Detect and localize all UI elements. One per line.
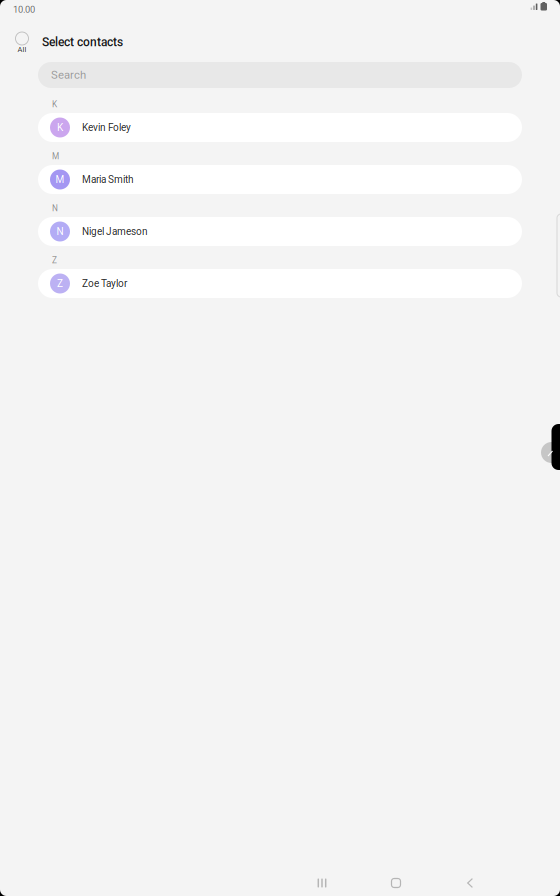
button[interactable]: Recent apps xyxy=(285,868,359,896)
button[interactable]: M xyxy=(38,165,522,194)
staticText: M xyxy=(55,174,64,185)
button[interactable]: Back xyxy=(433,868,507,896)
staticText: N xyxy=(56,226,63,237)
staticText: Zoe Taylor xyxy=(82,278,127,289)
button[interactable]: Select all xyxy=(8,22,36,56)
staticText: Z xyxy=(52,256,57,265)
staticText: Nigel Jameson xyxy=(82,226,148,237)
staticText: M xyxy=(52,152,59,161)
staticText: Search xyxy=(51,68,86,82)
staticText: K xyxy=(57,122,63,133)
staticText: Kevin Foley xyxy=(82,122,131,133)
button[interactable]: Search xyxy=(38,62,522,88)
staticText: K xyxy=(52,100,57,109)
staticText: All xyxy=(17,45,26,54)
button[interactable]: Z xyxy=(38,269,522,298)
staticText: 10.00 xyxy=(13,4,35,15)
button[interactable]: N xyxy=(38,217,522,246)
staticText: Maria Smith xyxy=(82,174,134,185)
staticText: N xyxy=(52,204,58,213)
staticText: Select contacts xyxy=(42,35,123,49)
button[interactable]: K xyxy=(38,113,522,142)
staticText: Z xyxy=(57,278,63,289)
button[interactable]: Home xyxy=(359,868,433,896)
